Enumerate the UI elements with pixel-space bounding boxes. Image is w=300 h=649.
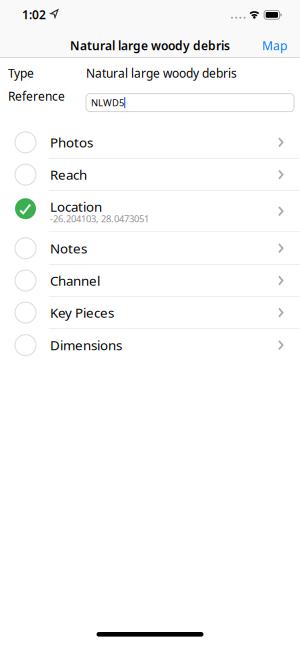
button[interactable]: Reference text field (86, 94, 294, 112)
staticText: Reference (8, 88, 65, 104)
button[interactable]: Location (0, 191, 300, 231)
staticText: Map (262, 37, 287, 53)
button[interactable]: Notes (0, 232, 300, 264)
button[interactable]: Dimensions (0, 329, 300, 361)
button[interactable]: Photos (0, 126, 300, 158)
button[interactable]: Map (262, 37, 300, 53)
staticText: Reach (50, 166, 87, 183)
staticText: Type (8, 65, 34, 81)
staticText: Dimensions (50, 336, 122, 354)
button[interactable]: Key Pieces (0, 297, 300, 328)
staticText: Key Pieces (50, 304, 114, 321)
button[interactable]: Reach (0, 159, 300, 190)
button[interactable]: Channel (0, 265, 300, 296)
staticText: Channel (50, 272, 100, 289)
staticText: Natural large woody debris (86, 65, 237, 81)
staticText: Location (50, 198, 102, 215)
staticText: 1:02 (22, 6, 46, 22)
staticText: -26.204103, 28.0473051 (50, 212, 149, 225)
staticText: Natural large woody debris (70, 37, 230, 53)
staticText: NLWD5 (91, 96, 124, 109)
staticText: Notes (50, 239, 87, 257)
staticText: Photos (50, 133, 93, 151)
